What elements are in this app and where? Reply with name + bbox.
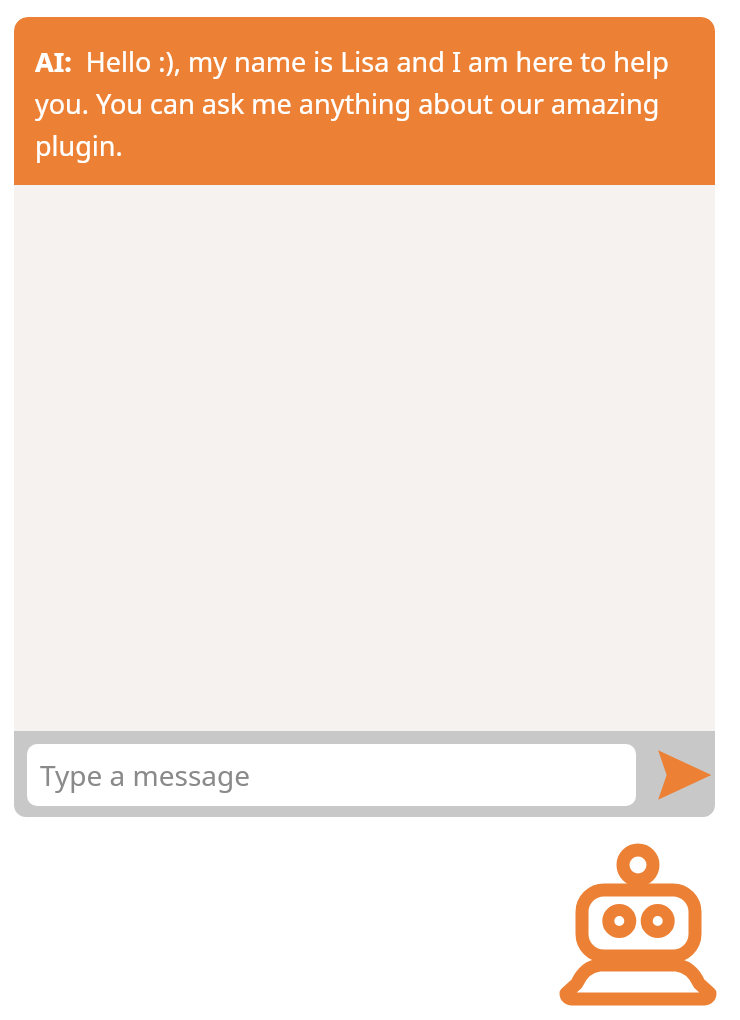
other: Chat assistant robot: [556, 840, 724, 1010]
staticText: Type a message: [40, 756, 251, 794]
button[interactable]: AI: Hello :), my name is Lisa and I am h…: [14, 17, 715, 185]
staticText: AI: Hello :), my name is Lisa and I am h…: [35, 43, 697, 177]
button[interactable]: Send message: [643, 744, 715, 806]
button[interactable]: Type a message: [27, 744, 636, 806]
